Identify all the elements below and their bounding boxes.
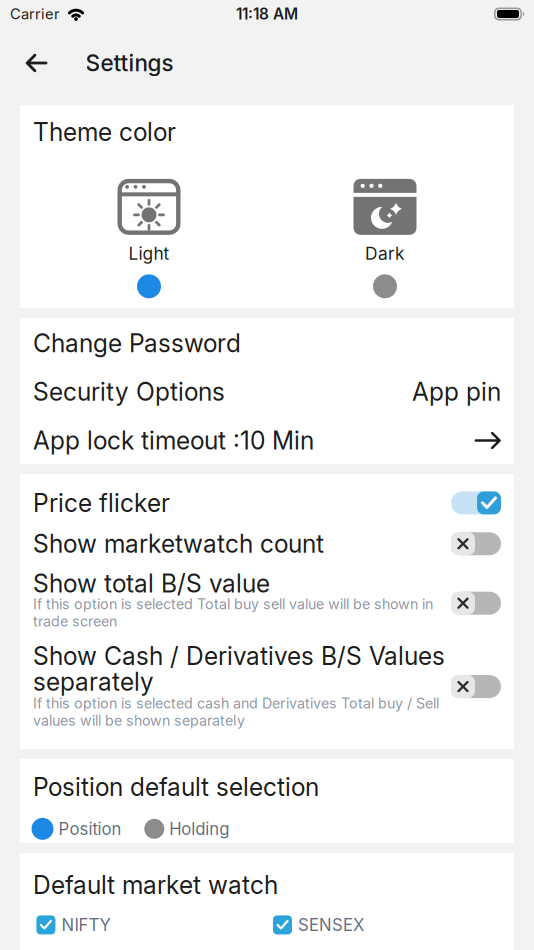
staticText: Light bbox=[128, 243, 169, 264]
staticText: App pin bbox=[412, 377, 501, 407]
button[interactable]: Price flicker bbox=[33, 474, 501, 518]
staticText: If this option is selected cash and Deri… bbox=[33, 695, 439, 729]
staticText: Show Cash / Derivatives B/S Values separ… bbox=[33, 641, 445, 697]
button[interactable]: App lock timeout :10 Min bbox=[20, 416, 514, 465]
staticText: Show marketwatch count bbox=[33, 529, 324, 559]
button[interactable]: Show marketwatch count bbox=[33, 518, 501, 559]
staticText: Show total B/S value bbox=[33, 569, 270, 598]
staticText: Change Password bbox=[33, 328, 241, 358]
button[interactable]: Security Options bbox=[20, 368, 514, 416]
staticText: Position default selection bbox=[33, 772, 319, 802]
staticText: Position bbox=[58, 819, 121, 839]
staticText: NIFTY bbox=[61, 915, 110, 935]
staticText: Dark bbox=[365, 243, 405, 264]
staticText: App lock timeout :10 Min bbox=[33, 426, 314, 455]
button[interactable]: Show total B/S value bbox=[33, 559, 501, 630]
staticText: Price flicker bbox=[33, 488, 170, 518]
staticText: SENSEX bbox=[298, 915, 364, 935]
button[interactable]: Show Cash / Derivatives B/S Values separ… bbox=[33, 630, 501, 729]
staticText: Default market watch bbox=[33, 870, 278, 900]
button[interactable]: Back bbox=[25, 54, 46, 72]
button[interactable]: SENSEX bbox=[273, 915, 364, 935]
button[interactable]: Position bbox=[31, 818, 121, 840]
staticText: Settings bbox=[85, 49, 173, 77]
button[interactable]: Dark bbox=[267, 179, 514, 298]
staticText: Carrier bbox=[10, 5, 60, 23]
staticText: 11:18 AM bbox=[236, 5, 298, 23]
staticText: If this option is selected Total buy sel… bbox=[33, 595, 433, 630]
button[interactable]: Holding bbox=[144, 819, 229, 839]
staticText: Theme color bbox=[33, 117, 176, 147]
button[interactable]: Change Password bbox=[20, 319, 514, 368]
staticText: Security Options bbox=[33, 377, 225, 407]
button[interactable]: NIFTY bbox=[36, 915, 110, 935]
button[interactable]: Light bbox=[20, 179, 267, 298]
staticText: Holding bbox=[169, 819, 229, 839]
